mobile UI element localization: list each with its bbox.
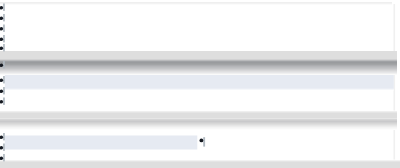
button[interactable]: [0, 0, 400, 168]
